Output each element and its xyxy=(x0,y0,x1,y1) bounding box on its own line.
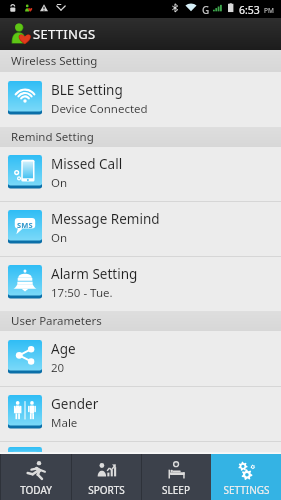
button[interactable]: BLE Setting xyxy=(0,72,281,127)
staticText: On xyxy=(51,230,68,246)
staticText: Male xyxy=(51,415,78,431)
staticText: 17:50 - Tue. xyxy=(51,285,113,301)
staticText: SETTINGS xyxy=(33,25,96,43)
button[interactable]: Sports xyxy=(71,454,141,500)
staticText: SETTINGS xyxy=(223,483,270,497)
button[interactable]: Gender xyxy=(0,386,281,441)
staticText: Message Remind xyxy=(51,210,160,228)
staticText: Height xyxy=(51,452,94,465)
staticText: Alarm Setting xyxy=(51,265,138,283)
button[interactable]: Sleep xyxy=(141,454,211,500)
staticText: PM xyxy=(264,6,274,15)
other: Today xyxy=(26,460,47,481)
staticText: SLEEP xyxy=(162,483,190,497)
button[interactable]: Today xyxy=(0,454,71,500)
button[interactable]: Alarm Setting xyxy=(0,256,281,311)
staticText: Missed Call xyxy=(51,155,123,173)
button[interactable]: Age xyxy=(0,331,281,386)
staticText: Remind Setting xyxy=(11,129,94,145)
staticText: Device Connected xyxy=(51,101,148,117)
staticText: On xyxy=(51,175,68,191)
staticText: BLE Setting xyxy=(51,81,123,99)
button[interactable]: Missed Call xyxy=(0,147,281,201)
button[interactable]: SMS xyxy=(0,201,281,256)
staticText: G xyxy=(202,3,210,17)
other: Sleep xyxy=(166,460,187,481)
staticText: SMS xyxy=(17,220,33,230)
staticText: Gender xyxy=(51,395,99,413)
staticText: TODAY xyxy=(20,483,52,497)
button[interactable]: Settings xyxy=(211,454,281,500)
other: Settings xyxy=(236,460,257,481)
staticText: User Parameters xyxy=(11,313,102,329)
staticText: SPORTS xyxy=(88,483,125,497)
staticText: 6:53 xyxy=(239,3,260,17)
staticText: Wireless Setting xyxy=(11,53,98,69)
staticText: Age xyxy=(51,340,76,358)
staticText: 20 xyxy=(51,360,65,376)
button[interactable]: Height xyxy=(0,441,281,454)
other: Sports xyxy=(96,460,117,481)
